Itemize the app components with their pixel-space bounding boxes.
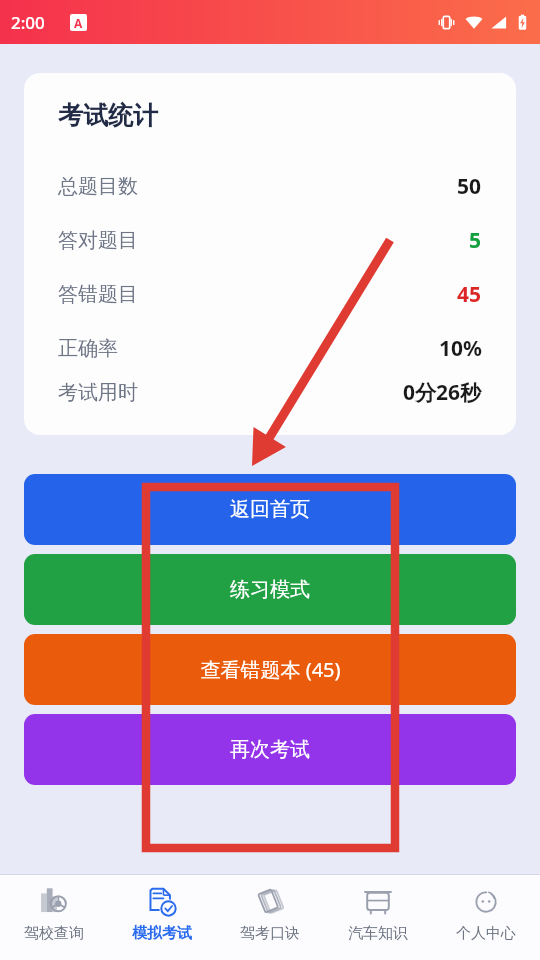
staticText: 驾校查询 xyxy=(24,924,84,943)
staticText: 驾考口诀 xyxy=(240,924,300,943)
staticText: A xyxy=(74,15,83,31)
button[interactable]: 练习模式 xyxy=(24,554,516,625)
button[interactable]: 查看错题本 (45) xyxy=(24,634,516,705)
staticText: 45 xyxy=(457,280,482,309)
staticText: 总题目数 xyxy=(58,174,138,199)
staticText: 练习模式 xyxy=(230,577,310,602)
staticText: 5 xyxy=(469,226,482,255)
staticText: 10% xyxy=(439,334,482,363)
button[interactable]: 个人中心 xyxy=(432,875,540,960)
staticText: 查看错题本 (45) xyxy=(200,656,341,683)
staticText: 再次考试 xyxy=(230,737,310,762)
staticText: 答对题目 xyxy=(58,228,138,253)
button[interactable]: 模拟考试 xyxy=(108,875,216,960)
staticText: 0分26秒 xyxy=(403,378,482,407)
button[interactable]: 汽车知识 xyxy=(324,875,432,960)
button[interactable]: 再次考试 xyxy=(24,714,516,785)
staticText: 返回首页 xyxy=(230,497,310,522)
staticText: 考试统计 xyxy=(58,100,158,131)
staticText: 考试用时 xyxy=(58,380,138,405)
staticText: 答错题目 xyxy=(58,282,138,307)
staticText: 2:00 xyxy=(11,11,45,34)
staticText: 50 xyxy=(457,172,482,201)
staticText: 正确率 xyxy=(58,336,118,361)
button[interactable]: 驾校查询 xyxy=(0,875,108,960)
staticText: 个人中心 xyxy=(456,924,516,943)
staticText: 汽车知识 xyxy=(348,924,408,943)
staticText: 模拟考试 xyxy=(132,924,192,943)
button[interactable]: 返回首页 xyxy=(24,474,516,545)
button[interactable]: 驾考口诀 xyxy=(216,875,324,960)
